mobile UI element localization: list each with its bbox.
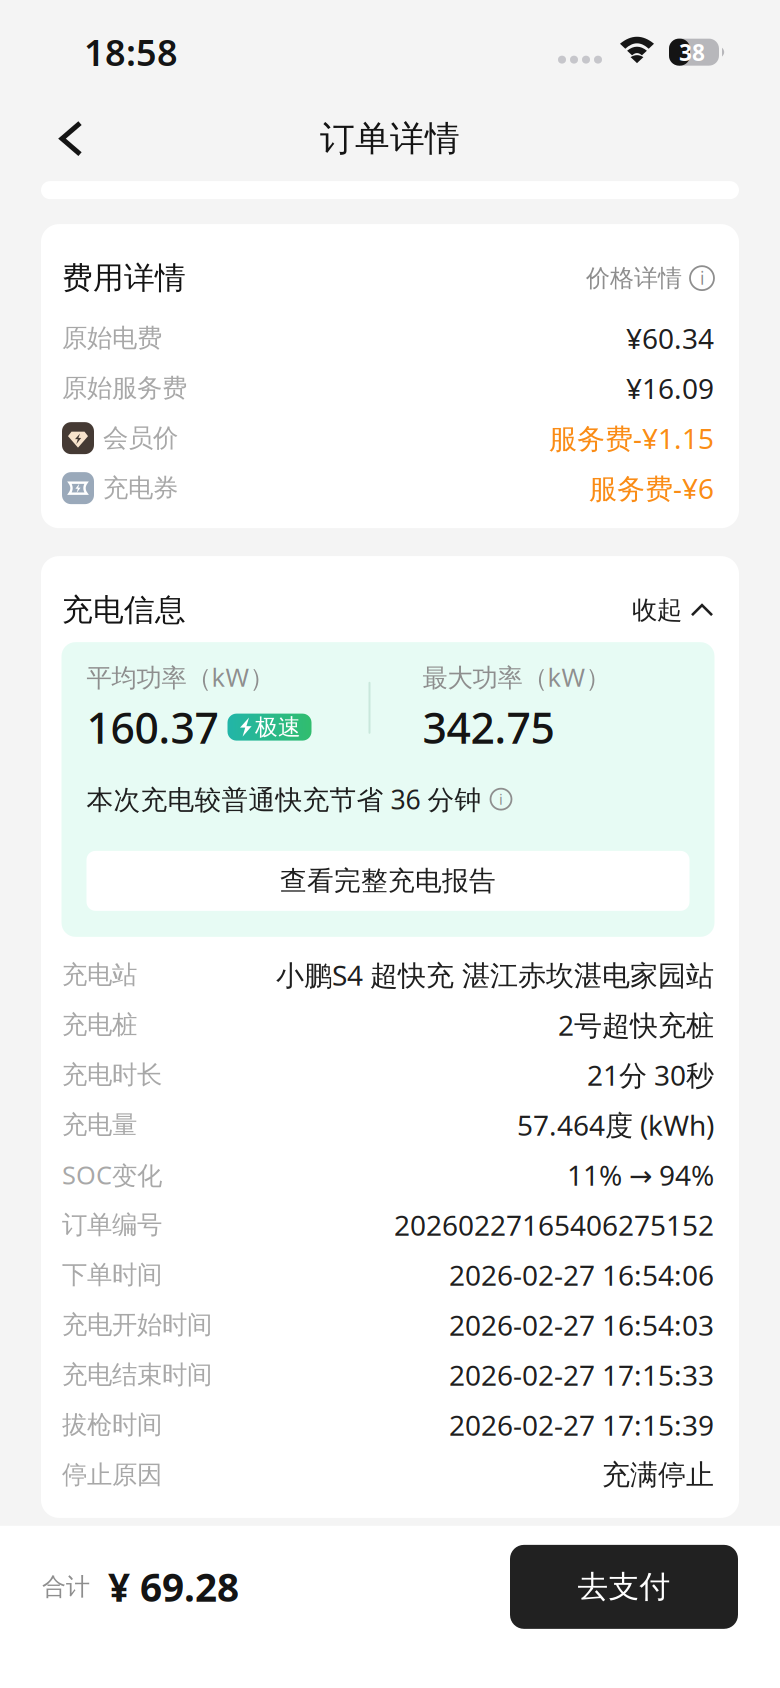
staticText: 会员价 (103, 423, 178, 454)
staticText: 2号超快充桩 (558, 1006, 714, 1043)
staticText: 21分 30秒 (587, 1056, 714, 1093)
staticText: 充电结束时间 (62, 1359, 212, 1390)
staticText: 收起 (632, 595, 682, 626)
staticText: 342.75 (422, 699, 554, 755)
button[interactable]: 查看完整充电报告 (86, 851, 689, 911)
staticText: 本次充电较普通快充节省 36 分钟 (86, 781, 481, 817)
staticText: 20260227165406275152 (394, 1206, 714, 1243)
staticText: 2026-02-27 16:54:06 (449, 1256, 714, 1293)
staticText: 停止原因 (62, 1459, 162, 1490)
staticText: 2026-02-27 17:15:39 (449, 1406, 714, 1443)
staticText: ¥ 69.28 (108, 1561, 239, 1612)
staticText: 充满停止 (602, 1458, 714, 1492)
staticText: 18:58 (84, 28, 178, 76)
staticText: 订单详情 (320, 117, 460, 160)
staticText: 去支付 (577, 1568, 670, 1606)
staticText: 2026-02-27 17:15:33 (449, 1356, 714, 1393)
staticText: 57.464度 (kWh) (517, 1106, 714, 1143)
staticText: 极速 (255, 713, 301, 741)
button[interactable]: Back (23, 96, 119, 181)
staticText: 2026-02-27 16:54:03 (449, 1306, 714, 1343)
staticText: 原始电费 (62, 323, 162, 354)
staticText: 160.37 (86, 699, 218, 755)
staticText: 价格详情 (586, 263, 682, 293)
staticText: i (700, 267, 704, 290)
staticText: 充电站 (62, 959, 137, 990)
staticText: 38 (679, 37, 705, 67)
staticText: 平均功率（kW） (86, 660, 274, 694)
staticText: 费用详情 (62, 259, 186, 297)
staticText: 查看完整充电报告 (280, 864, 496, 897)
button[interactable]: 去支付 (510, 1545, 738, 1629)
staticText: 充电时长 (62, 1059, 162, 1090)
staticText: 充电量 (62, 1109, 137, 1140)
staticText: 原始服务费 (62, 373, 187, 404)
staticText: 充电桩 (62, 1009, 137, 1040)
button[interactable]: 价格详情 (586, 263, 714, 293)
staticText: 充电券 (103, 473, 178, 504)
staticText: i (499, 789, 503, 809)
staticText: 服务费-¥6 (589, 470, 714, 507)
staticText: 合计 (42, 1572, 90, 1602)
staticText: ¥16.09 (626, 370, 714, 407)
staticText: 下单时间 (62, 1259, 162, 1290)
staticText: 充电信息 (62, 591, 186, 629)
staticText: SOC变化 (62, 1158, 162, 1192)
staticText: 订单编号 (62, 1209, 162, 1240)
staticText: 11% → 94% (567, 1156, 714, 1193)
button[interactable]: 收起 (632, 595, 714, 626)
staticText: 充电开始时间 (62, 1309, 212, 1340)
staticText: 最大功率（kW） (422, 660, 610, 694)
staticText: ¥60.34 (626, 320, 714, 357)
staticText: 小鹏S4 超快充 湛江赤坎湛电家园站 (276, 956, 714, 993)
staticText: 服务费-¥1.15 (549, 420, 714, 457)
staticText: 拔枪时间 (62, 1409, 162, 1440)
